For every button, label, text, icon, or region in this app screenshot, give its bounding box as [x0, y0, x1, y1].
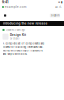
- staticText: Introducing the new release: [2, 22, 47, 25]
- staticText: Sign in: [51, 14, 59, 17]
- staticText: by Studio: [10, 37, 19, 40]
- staticText: example.com: [5, 5, 27, 9]
- staticText: Works with every major framework: [2, 49, 42, 52]
- staticText: ↻: [59, 5, 62, 9]
- staticText: Design Kit: [10, 33, 26, 37]
- staticText: tokens for building interfaces fast.: [2, 45, 43, 49]
- staticText: and ships with docs.: [2, 53, 27, 56]
- staticText: ≡ ▮: [58, 0, 62, 3]
- staticText: 9:41: [2, 0, 8, 4]
- staticText: ᴀA: [55, 5, 58, 9]
- staticText: Updated 2 days ago: [5, 28, 24, 31]
- staticText: A complete set of components and: [2, 42, 44, 45]
